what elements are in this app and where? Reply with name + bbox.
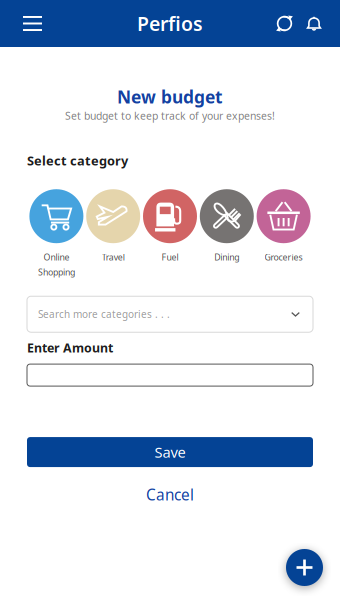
button[interactable]: Travel — [85, 189, 142, 279]
button[interactable]: Notifications — [300, 0, 337, 47]
staticText: Fuel — [161, 251, 178, 263]
button[interactable] — [27, 364, 313, 386]
staticText: Online — [43, 251, 69, 263]
staticText: New budget — [117, 85, 223, 109]
button[interactable]: Menu — [3, 0, 53, 47]
button[interactable]: Save — [27, 437, 313, 467]
button[interactable]: Groceries — [255, 189, 312, 279]
staticText: Set budget to keep track of your expense… — [65, 109, 275, 123]
staticText: Groceries — [265, 251, 303, 263]
staticText: Cancel — [146, 484, 194, 505]
staticText: Perfios — [137, 10, 203, 37]
button[interactable]: Add — [286, 549, 323, 586]
staticText: Search more categories . . . — [38, 307, 170, 321]
button[interactable]: Dining — [198, 189, 255, 279]
staticText: Enter Amount — [27, 339, 113, 356]
staticText: Travel — [102, 251, 125, 263]
staticText: Save — [154, 442, 185, 462]
staticText: Shopping — [38, 266, 75, 278]
button[interactable]: Online — [28, 189, 85, 279]
staticText: Select category — [27, 152, 128, 169]
staticText: Dining — [214, 251, 239, 263]
button[interactable]: Search more categories . . . — [27, 296, 313, 332]
button[interactable]: Fuel — [142, 189, 198, 279]
button[interactable]: Refresh — [266, 0, 300, 47]
button[interactable]: Cancel — [126, 479, 214, 510]
